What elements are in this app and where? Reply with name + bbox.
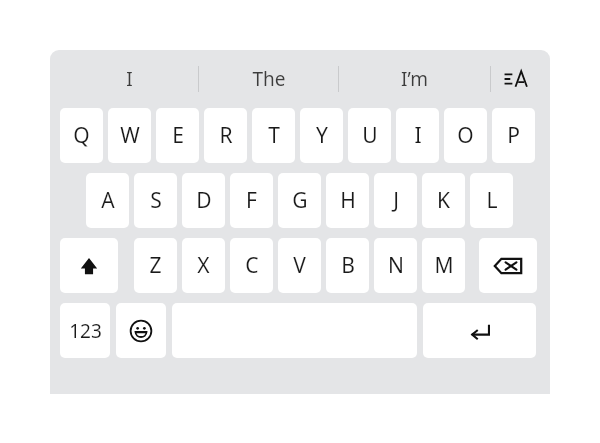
staticText: U	[362, 121, 378, 150]
button[interactable]: R	[204, 108, 247, 163]
staticText: K	[437, 186, 450, 215]
staticText: E	[172, 121, 184, 150]
button[interactable]: T	[252, 108, 295, 163]
staticText: S	[150, 186, 162, 215]
staticText: X	[197, 251, 210, 280]
staticText: Y	[316, 121, 328, 150]
staticText: I	[414, 121, 422, 150]
staticText: J	[393, 186, 399, 215]
staticText: W	[120, 121, 140, 150]
button[interactable]: F	[230, 173, 273, 228]
button[interactable]: B	[326, 238, 369, 293]
button[interactable]: Q	[60, 108, 103, 163]
button[interactable]: Z	[134, 238, 177, 293]
button[interactable]: Enter	[423, 303, 536, 358]
staticText: G	[292, 186, 308, 215]
button[interactable]: U	[348, 108, 391, 163]
button[interactable]: I	[396, 108, 439, 163]
button[interactable]: L	[470, 173, 513, 228]
button[interactable]: Y	[300, 108, 343, 163]
staticText: I	[126, 66, 133, 92]
staticText: The	[252, 66, 286, 92]
button[interactable]: N	[374, 238, 417, 293]
button[interactable]: The	[199, 59, 338, 99]
staticText: C	[245, 251, 259, 280]
button[interactable]: Shift	[60, 238, 118, 293]
staticText: T	[268, 121, 280, 150]
button[interactable]: S	[134, 173, 177, 228]
staticText: D	[196, 186, 212, 215]
staticText: M	[434, 251, 454, 280]
button[interactable]: Backspace	[479, 238, 537, 293]
staticText: L	[486, 186, 498, 215]
button[interactable]: 123	[60, 303, 110, 358]
staticText: I’m	[401, 66, 428, 92]
button[interactable]: P	[492, 108, 535, 163]
staticText: A	[101, 186, 115, 215]
button[interactable]: O	[444, 108, 487, 163]
staticText: H	[340, 186, 356, 215]
staticText: 123	[69, 318, 102, 344]
button[interactable]: K	[422, 173, 465, 228]
button[interactable]: V	[278, 238, 321, 293]
staticText: N	[388, 251, 404, 280]
button[interactable]: I’m	[339, 59, 490, 99]
button[interactable]: E	[156, 108, 199, 163]
staticText: O	[457, 121, 474, 150]
staticText: R	[219, 121, 233, 150]
staticText: Q	[73, 121, 90, 150]
staticText: B	[341, 251, 355, 280]
button[interactable]: I	[60, 59, 198, 99]
button[interactable]: Emoji	[116, 303, 166, 358]
button[interactable]: X	[182, 238, 225, 293]
staticText: F	[246, 186, 257, 215]
button[interactable]: G	[278, 173, 321, 228]
button[interactable]: A	[86, 173, 129, 228]
button[interactable]: D	[182, 173, 225, 228]
button[interactable]: J	[374, 173, 417, 228]
staticText: P	[507, 121, 520, 150]
button[interactable]: C	[230, 238, 273, 293]
staticText: Z	[149, 251, 162, 280]
button[interactable]: W	[108, 108, 151, 163]
staticText: V	[293, 251, 306, 280]
button[interactable]: H	[326, 173, 369, 228]
button[interactable]: Text formatting	[491, 59, 541, 99]
button[interactable]: M	[422, 238, 465, 293]
